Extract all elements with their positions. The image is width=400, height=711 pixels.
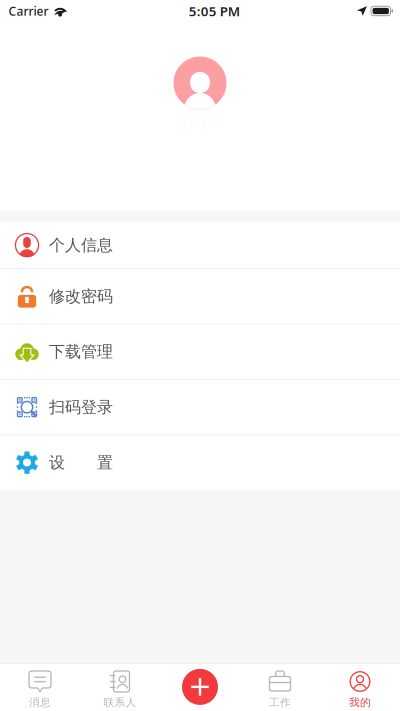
button[interactable]: 工作 xyxy=(240,664,320,711)
button[interactable]: Profile photo xyxy=(173,56,226,109)
button[interactable]: 消息 xyxy=(0,664,80,711)
button[interactable]: New xyxy=(182,669,218,705)
button[interactable]: 个人信息 xyxy=(0,222,400,268)
staticText: 下载管理 xyxy=(49,342,113,362)
staticText: 设 置 xyxy=(49,453,113,472)
staticText: 个人信息 xyxy=(49,235,113,255)
staticText: 联系人 xyxy=(103,696,136,709)
staticText: Carrier xyxy=(8,3,48,19)
staticText: 工作 xyxy=(269,696,291,709)
button[interactable]: 联系人 xyxy=(80,664,160,711)
staticText: 修改密码 xyxy=(49,286,113,306)
button[interactable]: 设 置 xyxy=(0,435,400,490)
button[interactable]: 下载管理 xyxy=(0,324,400,379)
staticText: 我的 xyxy=(349,696,371,709)
staticText: 扫码登录 xyxy=(49,397,113,417)
button[interactable]: 扫码登录 xyxy=(0,380,400,434)
button[interactable]: 修改密码 xyxy=(0,269,400,324)
button[interactable]: 我的 xyxy=(320,664,400,711)
staticText: 消息 xyxy=(29,696,51,709)
staticText: 5:05 PM xyxy=(189,2,240,20)
